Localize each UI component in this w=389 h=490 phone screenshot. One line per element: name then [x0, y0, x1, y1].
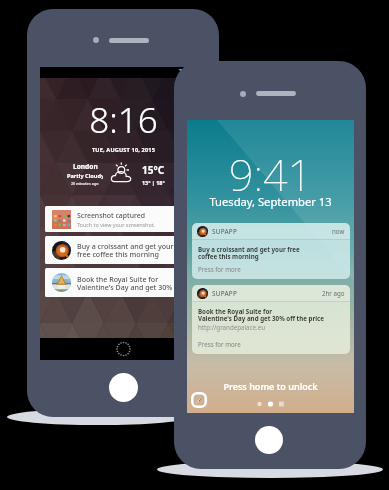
button[interactable]: Buy a croissant and get your free coffee… — [45, 236, 201, 264]
staticText: 20 minutes ago — [71, 181, 99, 186]
staticText: Book the Royal Suite for Valentine's Day… — [77, 274, 173, 292]
staticText: http://grandepalace.eu — [198, 323, 265, 331]
staticText: Touch to view your screenshot. — [77, 221, 156, 228]
staticText: Press for more — [198, 265, 241, 273]
staticText: 2hr ago — [322, 289, 345, 297]
button[interactable]: SUPAPP — [192, 223, 350, 279]
staticText: 8:16 — [40, 96, 207, 144]
staticText: now — [332, 227, 345, 235]
staticText: London — [73, 162, 98, 171]
button[interactable]: Screenshot captured — [45, 206, 201, 232]
staticText: SUPAPP — [212, 227, 237, 236]
staticText: Buy a croissant and get your free coffee… — [77, 241, 174, 259]
staticText: Screenshot captured — [77, 211, 146, 220]
button[interactable]: Camera — [191, 392, 207, 408]
staticText: 9:41 — [187, 145, 354, 204]
staticText: Buy a croissant and get your free coffee… — [198, 245, 300, 261]
button[interactable]: Book the Royal Suite for Valentine's Day… — [45, 268, 201, 297]
staticText: Tuesday, September 13 — [187, 194, 354, 209]
staticText: Book the Royal Suite for Valentine's Day… — [198, 307, 324, 323]
button[interactable]: SUPAPP — [192, 285, 350, 354]
staticText: SUPAPP — [212, 289, 237, 298]
staticText: 15°C — [142, 163, 165, 177]
staticText: Partly Cloudy — [67, 172, 103, 180]
staticText: Press home to unlock — [187, 380, 354, 392]
staticText: TUE, AUGUST 10, 2015 — [40, 146, 207, 154]
staticText: Press for more — [198, 340, 241, 348]
staticText: 13° | 18° — [142, 179, 165, 186]
